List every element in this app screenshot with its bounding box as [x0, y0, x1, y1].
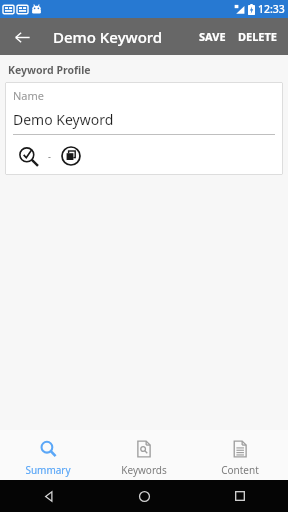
button[interactable]: Back	[6, 21, 38, 53]
button[interactable]: Home	[96, 480, 192, 512]
button[interactable]: DELETE	[234, 23, 282, 50]
button[interactable]: Summary	[0, 430, 96, 480]
button[interactable]: Back	[0, 480, 96, 512]
staticText: -	[48, 150, 51, 162]
button[interactable]: Copy	[58, 143, 84, 169]
staticText: Demo Keyword	[13, 110, 114, 129]
staticText: Keywords	[121, 463, 167, 477]
button[interactable]: Recent apps	[192, 480, 288, 512]
staticText: 12:33	[258, 2, 285, 16]
button[interactable]: Content	[192, 430, 288, 480]
button[interactable]: Search check	[15, 143, 41, 169]
staticText: Demo Keyword	[53, 27, 163, 47]
staticText: Content	[221, 463, 259, 477]
button[interactable]: SAVE	[195, 23, 230, 50]
staticText: Keyword Profile	[8, 63, 91, 77]
staticText: Summary	[25, 463, 71, 477]
button[interactable]: Demo Keyword	[5, 110, 283, 135]
staticText: DELETE	[238, 29, 278, 44]
staticText: Name	[13, 88, 45, 103]
staticText: SAVE	[199, 29, 226, 44]
button[interactable]: Keywords	[96, 430, 192, 480]
